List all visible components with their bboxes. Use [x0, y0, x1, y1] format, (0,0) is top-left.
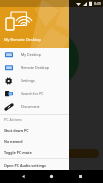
staticText: My Remote Desktop	[4, 37, 41, 42]
button[interactable]: Back	[18, 171, 29, 182]
staticText: My Desktop	[21, 52, 41, 57]
staticText: Remote Desktop	[21, 65, 50, 70]
button[interactable]: Disconnect	[0, 100, 69, 113]
staticText: Settings	[21, 78, 35, 83]
staticText: 8:39	[94, 1, 101, 6]
button[interactable]: Shut down PC	[0, 125, 69, 136]
button[interactable]: Search for PC	[0, 87, 69, 100]
staticText: Disconnect	[21, 104, 40, 109]
staticText: Shut down PC	[4, 128, 29, 133]
button[interactable]: My Desktop	[0, 48, 69, 61]
staticText: PC Actions	[4, 117, 22, 122]
button[interactable]: Settings	[0, 74, 69, 87]
button[interactable]: Open PC Audio settings	[0, 160, 69, 171]
button[interactable]: Home	[46, 171, 57, 182]
staticText: Search for PC	[21, 91, 44, 96]
button[interactable]: Remote Desktop	[0, 61, 69, 74]
staticText: No named	[4, 139, 23, 144]
staticText: Open PC Audio settings	[4, 163, 46, 168]
button[interactable]: Toggle PC mute	[0, 147, 69, 158]
button[interactable]: No named	[0, 136, 69, 147]
button[interactable]: Recent apps	[75, 171, 86, 182]
staticText: Toggle PC mute	[4, 150, 32, 155]
button[interactable]: Connect to PC	[67, 149, 99, 158]
